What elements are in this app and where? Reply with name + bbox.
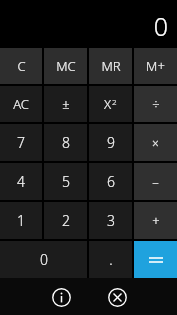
staticText: C <box>17 57 26 75</box>
staticText: X <box>104 95 112 113</box>
button[interactable]: + <box>134 202 177 239</box>
staticText: AC <box>13 95 29 113</box>
button[interactable]: X <box>89 86 132 122</box>
button[interactable]: 3 <box>89 202 132 239</box>
staticText: × <box>152 135 159 151</box>
button[interactable]: AC <box>0 86 42 122</box>
staticText: 3 <box>107 211 115 230</box>
button[interactable]: MC <box>44 48 87 84</box>
button[interactable]: About <box>39 282 83 312</box>
button[interactable]: . <box>89 241 132 278</box>
staticText: 8 <box>62 133 70 152</box>
staticText: 5 <box>62 172 70 191</box>
staticText: 1 <box>17 211 25 230</box>
button[interactable]: – <box>134 163 177 200</box>
button[interactable]: × <box>134 124 177 161</box>
button[interactable]: ± <box>44 86 87 122</box>
button[interactable]: Close <box>95 282 139 312</box>
button[interactable]: MR <box>89 48 132 84</box>
button[interactable]: M+ <box>134 48 177 84</box>
button[interactable]: 6 <box>89 163 132 200</box>
button[interactable]: 1 <box>0 202 42 239</box>
button[interactable]: Equals <box>134 241 177 278</box>
staticText: 7 <box>17 133 25 152</box>
staticText: 0 <box>153 9 168 43</box>
staticText: 4 <box>17 172 25 191</box>
staticText: . <box>109 250 113 269</box>
staticText: M+ <box>146 57 165 75</box>
staticText: 6 <box>107 172 115 191</box>
button[interactable]: 9 <box>89 124 132 161</box>
staticText: + <box>152 212 160 230</box>
button[interactable]: 2 <box>44 202 87 239</box>
button[interactable]: 5 <box>44 163 87 200</box>
staticText: ÷ <box>152 95 160 113</box>
staticText: – <box>152 173 159 191</box>
button[interactable]: 0 <box>0 241 87 278</box>
staticText: MC <box>56 57 76 75</box>
staticText: 9 <box>107 133 115 152</box>
staticText: MR <box>101 57 121 75</box>
button[interactable]: 7 <box>0 124 42 161</box>
button[interactable]: ÷ <box>134 86 177 122</box>
staticText: 0 <box>40 250 48 269</box>
staticText: 2 <box>112 96 117 107</box>
staticText: ± <box>62 95 70 113</box>
staticText: 2 <box>62 211 70 230</box>
button[interactable]: 8 <box>44 124 87 161</box>
button[interactable]: 4 <box>0 163 42 200</box>
button[interactable]: C <box>0 48 42 84</box>
